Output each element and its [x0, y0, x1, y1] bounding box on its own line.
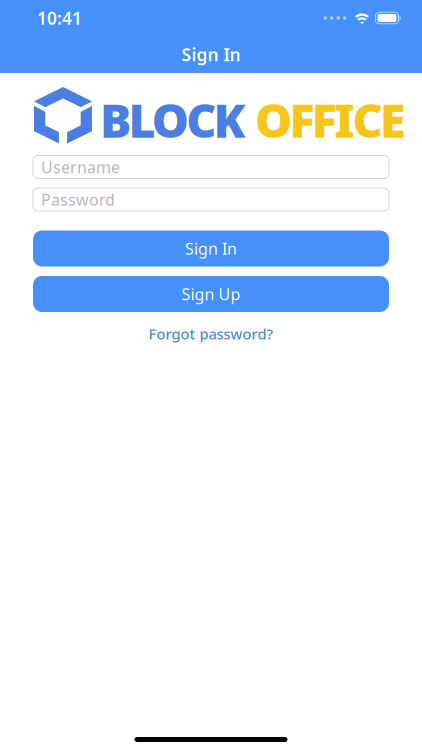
- button[interactable]: Password: [33, 188, 389, 211]
- staticText: BLOCK: [100, 89, 255, 151]
- staticText: OFFICE: [255, 89, 406, 151]
- staticText: Forgot password?: [148, 324, 273, 343]
- button[interactable]: Forgot password?: [148, 324, 273, 343]
- button[interactable]: Username: [33, 155, 389, 178]
- staticText: Password: [41, 189, 115, 210]
- staticText: Sign In: [185, 238, 237, 259]
- button[interactable]: Sign Up: [33, 276, 389, 312]
- staticText: Sign Up: [181, 283, 240, 305]
- staticText: 10:41: [37, 6, 82, 29]
- staticText: Username: [41, 156, 120, 178]
- button[interactable]: Sign In: [33, 230, 389, 266]
- staticText: Sign In: [181, 43, 240, 66]
